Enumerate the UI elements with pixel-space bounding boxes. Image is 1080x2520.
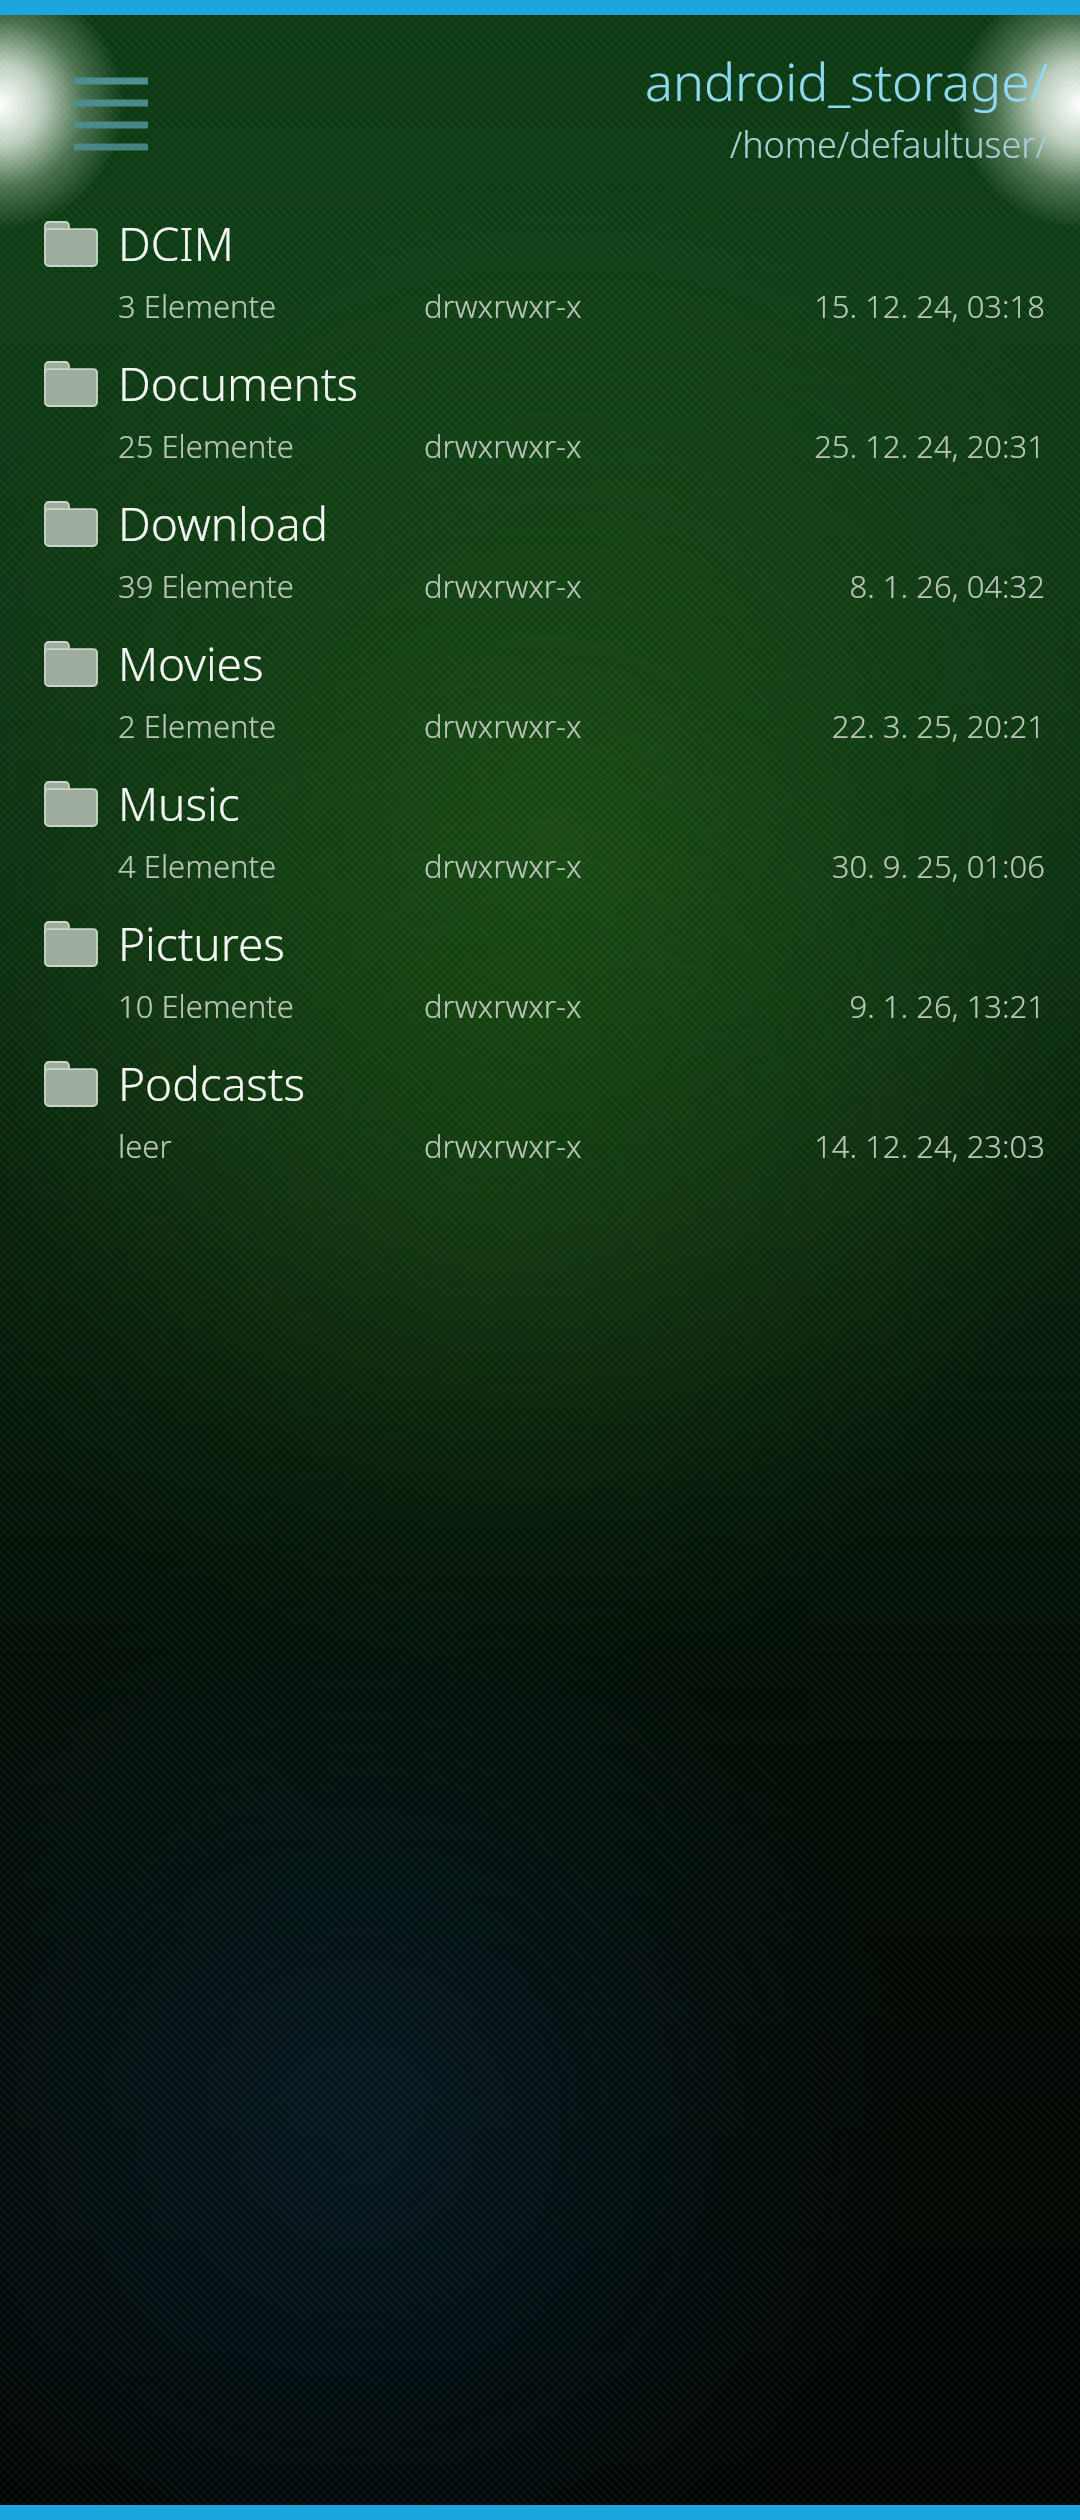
- staticText: android_storage/: [645, 45, 1048, 116]
- staticText: 4 Elemente: [118, 845, 424, 887]
- staticText: 10 Elemente: [118, 985, 424, 1027]
- staticText: drwxrwxr-x: [424, 565, 739, 607]
- staticText: drwxrwxr-x: [424, 285, 739, 327]
- button[interactable]: android_storage/: [645, 45, 1048, 169]
- staticText: drwxrwxr-x: [424, 845, 739, 887]
- button[interactable]: Documents: [0, 350, 1080, 490]
- staticText: Music: [118, 772, 240, 835]
- button[interactable]: Menu: [60, 63, 160, 163]
- staticText: leer: [118, 1125, 424, 1167]
- staticText: drwxrwxr-x: [424, 425, 739, 467]
- staticText: drwxrwxr-x: [424, 705, 739, 747]
- button[interactable]: Podcasts: [0, 1050, 1080, 1190]
- staticText: Documents: [118, 352, 359, 415]
- button[interactable]: Movies: [0, 630, 1080, 770]
- staticText: Pictures: [118, 912, 285, 975]
- staticText: 15. 12. 24, 03:18: [739, 285, 1045, 327]
- staticText: 25 Elemente: [118, 425, 424, 467]
- staticText: 25. 12. 24, 20:31: [739, 425, 1045, 467]
- button[interactable]: Pictures: [0, 910, 1080, 1050]
- button[interactable]: Download: [0, 490, 1080, 630]
- staticText: 22. 3. 25, 20:21: [739, 705, 1045, 747]
- staticText: 3 Elemente: [118, 285, 424, 327]
- staticText: 2 Elemente: [118, 705, 424, 747]
- staticText: 8. 1. 26, 04:32: [739, 565, 1045, 607]
- staticText: drwxrwxr-x: [424, 1125, 739, 1167]
- staticText: DCIM: [118, 212, 234, 275]
- staticText: 30. 9. 25, 01:06: [739, 845, 1045, 887]
- button[interactable]: DCIM: [0, 210, 1080, 350]
- staticText: Movies: [118, 632, 264, 695]
- button[interactable]: Music: [0, 770, 1080, 910]
- staticText: drwxrwxr-x: [424, 985, 739, 1027]
- staticText: /home/defaultuser/: [729, 120, 1048, 169]
- staticText: 9. 1. 26, 13:21: [739, 985, 1045, 1027]
- staticText: Podcasts: [118, 1052, 306, 1115]
- staticText: 39 Elemente: [118, 565, 424, 607]
- staticText: 14. 12. 24, 23:03: [739, 1125, 1045, 1167]
- staticText: Download: [118, 492, 329, 555]
